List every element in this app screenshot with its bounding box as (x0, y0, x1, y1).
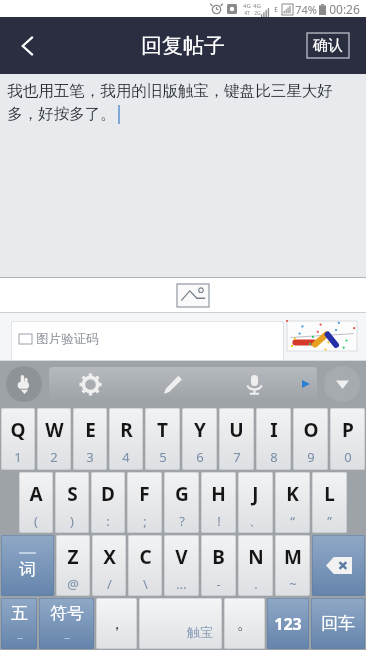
staticText: 回车 (321, 613, 355, 634)
button[interactable]: B (201, 535, 236, 596)
staticText: Q (10, 417, 26, 443)
staticText: E (274, 5, 278, 14)
staticText: ” (327, 512, 332, 530)
staticText: 8 (270, 448, 278, 466)
button[interactable]: V (164, 535, 199, 596)
button[interactable]: A (19, 472, 53, 533)
button[interactable]: ， (96, 598, 137, 649)
staticText: … (176, 575, 187, 593)
staticText: 4 (122, 448, 130, 466)
button[interactable]: X (92, 535, 126, 596)
button[interactable]: O (293, 408, 328, 470)
button[interactable]: Edit (131, 367, 213, 401)
button[interactable]: Y (182, 408, 217, 470)
staticText: 词 (19, 559, 36, 580)
staticText: ; (143, 512, 147, 530)
button[interactable]: I (256, 408, 291, 470)
button[interactable]: J (238, 472, 273, 533)
button[interactable]: U (219, 408, 254, 470)
staticText: H (211, 481, 226, 507)
button[interactable]: Settings (49, 367, 131, 401)
staticText: 0 (344, 448, 352, 466)
button[interactable]: 确认 (300, 30, 356, 61)
staticText: ) (70, 512, 74, 530)
staticText: @ (67, 575, 79, 593)
staticText: N (248, 544, 264, 570)
button[interactable]: H (201, 472, 236, 533)
button[interactable]: 123 (267, 598, 309, 649)
staticText: B (212, 544, 225, 570)
staticText: 4G (253, 2, 261, 10)
button[interactable]: K (275, 472, 310, 533)
staticText: ， (109, 614, 125, 634)
staticText: “ (290, 512, 295, 530)
button[interactable]: Q (1, 408, 35, 470)
staticText: 五 (11, 603, 28, 624)
staticText: / (107, 575, 112, 593)
button[interactable]: D (91, 472, 125, 533)
staticText: Z (67, 544, 79, 570)
staticText: F (139, 481, 150, 507)
staticText: 123 (274, 613, 302, 635)
staticText: G (175, 481, 189, 507)
button[interactable]: Insert image (177, 284, 209, 307)
staticText: 符号 (50, 603, 84, 624)
button[interactable]: Handwriting (6, 366, 42, 402)
button[interactable]: More (295, 367, 317, 401)
button[interactable]: Hide keyboard (324, 366, 360, 402)
button[interactable]: 符号 (39, 598, 94, 649)
staticText: R (120, 417, 133, 443)
staticText: ! (217, 512, 221, 530)
staticText: 回复帖子 (141, 33, 225, 59)
staticText: O (303, 417, 319, 443)
staticText: K (286, 481, 299, 507)
staticText: 4T (244, 10, 250, 17)
button[interactable]: R (109, 408, 143, 470)
button[interactable]: Back (0, 18, 56, 74)
staticText: 5 (159, 448, 167, 466)
button[interactable]: 回车 (311, 598, 365, 649)
staticText: 触宝 (187, 624, 213, 640)
staticText: 9 (307, 448, 315, 466)
button[interactable]: F (127, 472, 162, 533)
staticText: : (106, 512, 110, 530)
button[interactable]: 五 (1, 598, 37, 649)
staticText: - (216, 575, 221, 593)
button[interactable]: T (145, 408, 180, 470)
button[interactable]: Z (56, 535, 90, 596)
button[interactable]: Captcha image (287, 321, 357, 351)
staticText: ~ (289, 575, 297, 593)
button[interactable]: L (312, 472, 347, 533)
staticText: 确认 (313, 36, 343, 55)
staticText: Y (194, 417, 206, 443)
staticText: 7 (233, 448, 241, 466)
staticText: J (252, 481, 259, 507)
button[interactable]: G (164, 472, 199, 533)
staticText: S (67, 481, 78, 507)
button[interactable]: N (238, 535, 273, 596)
staticText: ( (34, 512, 38, 530)
staticText: ··· (64, 634, 70, 644)
button[interactable]: 。 (224, 598, 265, 649)
staticText: 2 (50, 448, 58, 466)
button[interactable]: 词 (1, 535, 54, 596)
button[interactable]: M (275, 535, 310, 596)
staticText: P (342, 417, 354, 443)
staticText: ? (179, 512, 185, 530)
button[interactable]: Space (139, 598, 222, 649)
button[interactable]: C (128, 535, 162, 596)
staticText: 多，好按多了。 (7, 104, 116, 124)
button[interactable]: S (55, 472, 89, 533)
button[interactable]: P (330, 408, 365, 470)
staticText: W (45, 417, 64, 443)
button[interactable]: Voice input (213, 367, 295, 401)
button[interactable]: W (37, 408, 71, 470)
staticText: ··· (17, 634, 23, 644)
staticText: 4G (243, 2, 251, 10)
staticText: X (103, 544, 116, 570)
button[interactable]: 图片验证码 (11, 321, 284, 361)
staticText: 1 (14, 448, 22, 466)
button[interactable]: Backspace (312, 535, 365, 596)
button[interactable]: E (73, 408, 107, 470)
staticText: 3 (86, 448, 94, 466)
